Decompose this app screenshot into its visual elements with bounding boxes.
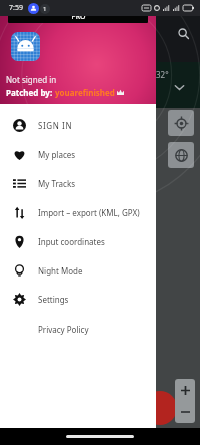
staticText: My places — [38, 149, 76, 160]
staticText: Settings — [38, 294, 69, 305]
button[interactable]: PRO — [8, 10, 148, 23]
staticText: Patched by: — [6, 87, 55, 98]
button[interactable]: SIGN IN — [0, 111, 156, 140]
button[interactable]: Import – export (KML, GPX) — [0, 198, 156, 227]
button[interactable]: Zoom in — [175, 379, 195, 401]
button[interactable]: Search — [172, 22, 194, 44]
button[interactable]: Input coordinates — [0, 227, 156, 256]
staticText: Not signed in — [6, 74, 57, 85]
staticText: 7:59 — [9, 3, 23, 13]
button[interactable]: Settings — [0, 285, 156, 314]
staticText: PRO — [71, 12, 86, 22]
button[interactable]: Map layers — [168, 142, 194, 168]
button[interactable]: My Tracks — [0, 169, 156, 198]
button[interactable]: My location — [168, 110, 194, 136]
button[interactable]: Expand weather — [168, 76, 190, 98]
button[interactable]: My places — [0, 140, 156, 169]
button[interactable]: Record track — [143, 391, 177, 425]
staticText: 32° — [156, 69, 169, 80]
staticText: 1 — [43, 5, 47, 13]
staticText: My Tracks — [38, 178, 76, 189]
staticText: Import – export (KML, GPX) — [38, 207, 140, 218]
button[interactable]: Night Mode — [0, 256, 156, 285]
button[interactable]: Privacy Policy — [0, 314, 156, 344]
button[interactable]: Zoom out — [175, 401, 195, 423]
staticText: Input coordinates — [38, 236, 105, 247]
staticText: youarefinished — [55, 87, 115, 98]
staticText: Privacy Policy — [38, 324, 89, 335]
staticText: Night Mode — [38, 265, 83, 276]
staticText: SIGN IN — [38, 120, 73, 131]
